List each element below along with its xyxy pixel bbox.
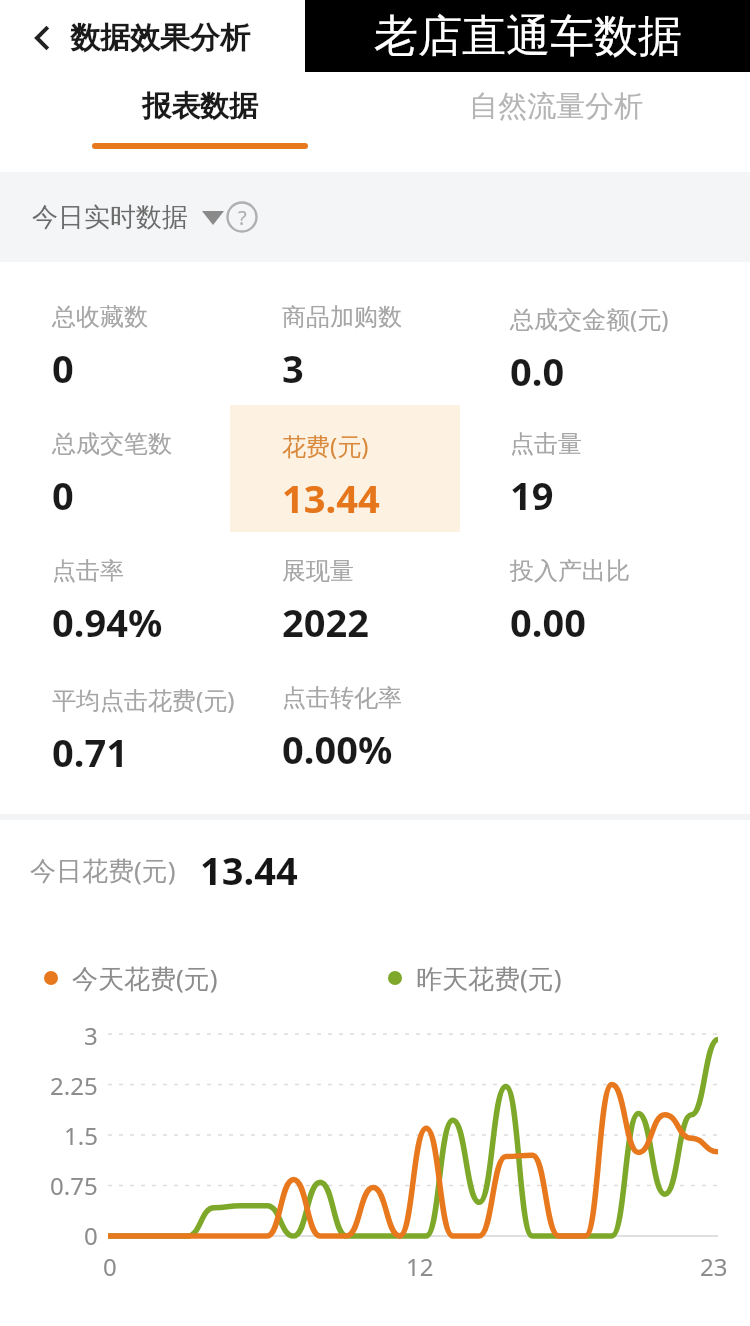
staticText: 报表数据 [142, 88, 258, 125]
staticText: 总收藏数 [52, 302, 148, 332]
button[interactable]: 总收藏数 [0, 278, 230, 405]
staticText: 0 [52, 469, 74, 521]
staticText: 自然流量分析 [469, 88, 643, 125]
staticText: 展现量 [282, 556, 354, 586]
staticText: 2.25 [50, 1069, 98, 1102]
staticText: 0.00 [510, 596, 586, 648]
staticText: 0.00% [282, 723, 393, 775]
staticText: 总成交金额(元) [510, 302, 669, 335]
staticText: 1.5 [64, 1119, 98, 1152]
button[interactable]: 投入产出比 [458, 532, 750, 659]
staticText: 13.44 [200, 844, 298, 896]
button[interactable]: 今日实时数据 [32, 201, 224, 234]
button[interactable]: 总成交笔数 [0, 405, 230, 532]
button[interactable]: 点击转化率 [230, 659, 460, 786]
staticText: 19 [510, 469, 554, 521]
staticText: 商品加购数 [282, 302, 402, 332]
button[interactable]: 点击率 [0, 532, 230, 659]
staticText: 12 [406, 1250, 434, 1283]
staticText: 0 [84, 1219, 98, 1252]
staticText: 昨天花费(元) [416, 960, 562, 996]
staticText: 0 [52, 342, 74, 394]
staticText: 3 [282, 342, 304, 394]
staticText: 0.0 [510, 345, 565, 397]
button[interactable]: 商品加购数 [230, 278, 460, 405]
button[interactable]: 平均点击花费(元) [0, 659, 230, 786]
staticText: 点击量 [510, 429, 582, 459]
staticText: 0.71 [52, 726, 128, 778]
button[interactable]: 总成交金额(元) [458, 278, 750, 405]
button[interactable]: Back [14, 12, 66, 64]
staticText: 2022 [282, 596, 369, 648]
button[interactable]: 点击量 [458, 405, 750, 532]
staticText: 平均点击花费(元) [52, 683, 235, 716]
staticText: 3 [84, 1019, 98, 1052]
staticText: 23 [700, 1250, 728, 1283]
staticText: 老店直通车数据 [374, 9, 682, 64]
button[interactable]: 花费(元) [230, 405, 460, 532]
button[interactable]: 展现量 [230, 532, 460, 659]
staticText: 今日实时数据 [32, 201, 188, 234]
staticText: 今日花费(元) [30, 852, 176, 888]
staticText: 0 [103, 1250, 117, 1283]
staticText: 今天花费(元) [72, 960, 218, 996]
button[interactable]: Help [220, 195, 264, 239]
staticText: 花费(元) [282, 429, 369, 462]
staticText: 0.94% [52, 596, 163, 648]
staticText: ? [238, 204, 247, 231]
staticText: 0.75 [50, 1169, 98, 1202]
button[interactable]: 自然流量分析 [406, 76, 706, 172]
staticText: 13.44 [282, 472, 380, 524]
staticText: 投入产出比 [510, 556, 630, 586]
staticText: 点击转化率 [282, 683, 402, 713]
staticText: 点击率 [52, 556, 124, 586]
button[interactable]: 报表数据 [52, 76, 348, 172]
staticText: 总成交笔数 [52, 429, 172, 459]
staticText: 数据效果分析 [70, 19, 250, 57]
